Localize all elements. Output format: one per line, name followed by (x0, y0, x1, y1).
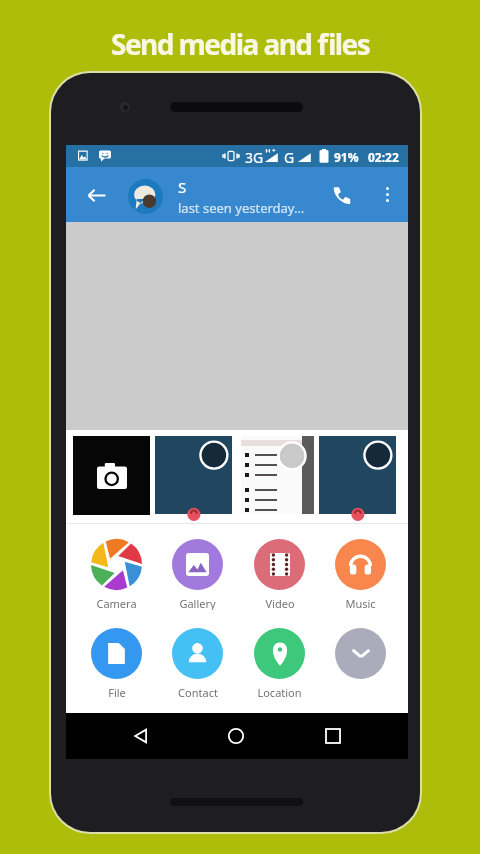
button[interactable]: Video (239, 539, 320, 610)
button[interactable]: More options (320, 628, 401, 685)
button[interactable]: Gallery (157, 539, 238, 610)
staticText: Gallery (179, 596, 216, 610)
button[interactable]: Video thumbnail (155, 436, 232, 514)
staticText: Camera (96, 596, 137, 610)
staticText: Location (257, 685, 302, 699)
button[interactable]: Open camera (73, 436, 150, 515)
button[interactable]: Back (80, 179, 112, 211)
staticText: 3G (245, 148, 264, 167)
staticText: Contact (178, 685, 218, 699)
button[interactable]: Contact (157, 628, 238, 699)
staticText: Send media and files (111, 25, 370, 63)
staticText: 02:22 (368, 149, 399, 165)
staticText: S (178, 177, 187, 197)
button[interactable]: Location (239, 628, 320, 699)
staticText: last seen yesterday… (178, 199, 305, 217)
staticText: G (284, 148, 295, 167)
button[interactable]: Contact photo (128, 179, 163, 214)
staticText: 91% (334, 149, 359, 165)
button[interactable]: Back (124, 719, 158, 753)
button[interactable]: Screenshot thumbnail (237, 436, 314, 514)
button[interactable]: Video thumbnail (319, 436, 396, 514)
staticText: Video (265, 596, 295, 610)
button[interactable]: File (76, 628, 157, 699)
staticText: Music (345, 596, 376, 610)
button[interactable]: Recents (316, 719, 350, 753)
button[interactable]: Call (324, 178, 358, 212)
staticText: File (108, 685, 126, 699)
button[interactable]: Home (219, 719, 253, 753)
button[interactable]: Camera (76, 539, 157, 610)
button[interactable]: More options (371, 178, 403, 210)
button[interactable]: Music (320, 539, 401, 610)
